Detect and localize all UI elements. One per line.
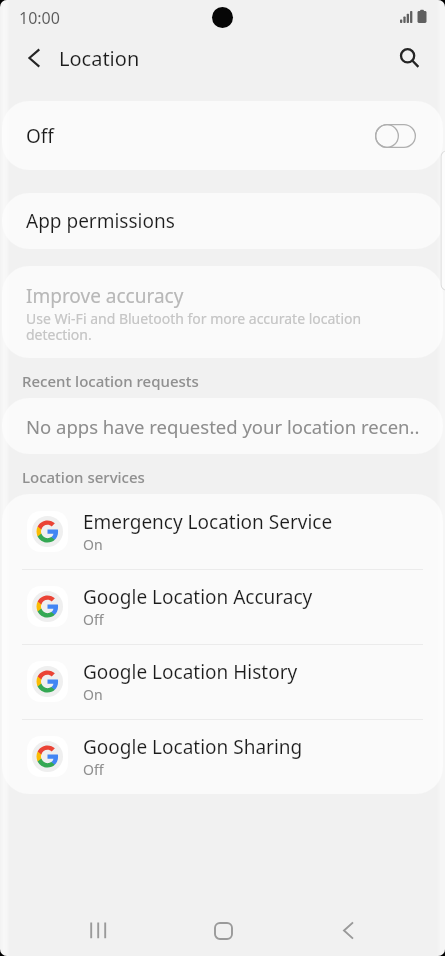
button[interactable]: Navigate up xyxy=(10,34,58,82)
staticText: Google Location Accuracy xyxy=(83,584,313,610)
button[interactable]: Google Location Sharing xyxy=(2,719,443,794)
staticText: Off xyxy=(83,610,104,629)
staticText: On xyxy=(83,535,103,554)
staticText: 10:00 xyxy=(19,7,60,29)
button[interactable]: Home xyxy=(193,900,254,956)
button[interactable]: App permissions xyxy=(2,193,443,249)
staticText: On xyxy=(83,685,103,704)
staticText: Google Location Sharing xyxy=(83,734,303,760)
button[interactable]: Recent apps xyxy=(68,900,129,956)
button[interactable]: Location switch, off xyxy=(375,124,416,148)
staticText: Emergency Location Service xyxy=(83,509,333,535)
button[interactable]: Google Location History xyxy=(2,644,443,719)
staticText: Location xyxy=(59,45,140,72)
staticText: Google Location History xyxy=(83,659,298,685)
staticText: App permissions xyxy=(26,208,175,234)
button[interactable]: Emergency Location Service xyxy=(2,494,443,569)
staticText: Improve accuracy xyxy=(26,283,184,309)
staticText: Use Wi-Fi and Bluetooth for more accurat… xyxy=(26,309,419,344)
staticText: Location services xyxy=(22,467,145,487)
staticText: Off xyxy=(26,123,54,149)
staticText: No apps have requested your location rec… xyxy=(26,414,420,439)
button[interactable]: Google Location Accuracy xyxy=(2,569,443,644)
staticText: Recent location requests xyxy=(22,371,199,391)
button[interactable]: Back xyxy=(317,900,378,956)
button[interactable]: Search xyxy=(386,34,434,82)
staticText: Off xyxy=(83,760,104,779)
